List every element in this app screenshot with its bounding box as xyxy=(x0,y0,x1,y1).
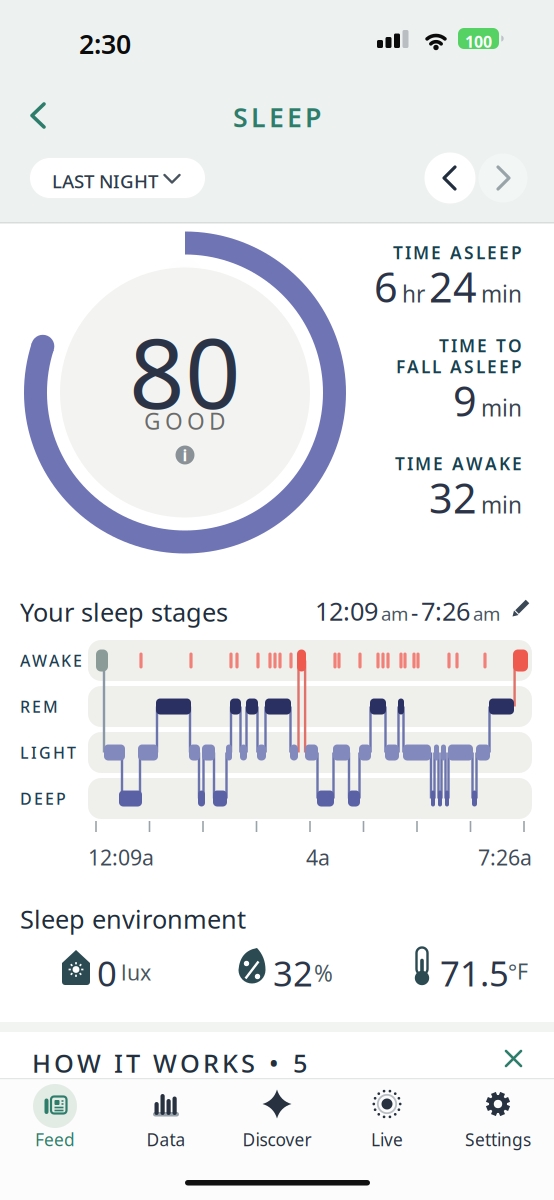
staticText: T I M E T O xyxy=(439,334,522,357)
staticText: i xyxy=(182,444,187,466)
staticText: min xyxy=(481,279,522,309)
staticText: 2:30 xyxy=(79,26,131,61)
staticText: A W A K E xyxy=(20,650,82,671)
staticText: S L E E P xyxy=(233,99,321,135)
staticText: 24 xyxy=(429,259,477,314)
staticText: 12:09a xyxy=(88,843,154,871)
staticText: R E M xyxy=(20,696,58,717)
staticText: min xyxy=(481,393,522,423)
staticText: D E E P xyxy=(20,788,66,809)
staticText: hr xyxy=(402,279,425,309)
staticText: T I M E A W A K E xyxy=(395,452,522,475)
staticText: 71.5 xyxy=(440,950,509,996)
staticText: Discover xyxy=(242,1128,311,1151)
staticText: 7:26 xyxy=(421,594,470,628)
staticText: G O O D xyxy=(144,406,226,436)
staticText: L I G H T xyxy=(20,742,76,763)
staticText: Settings xyxy=(465,1128,531,1151)
staticText: °F xyxy=(508,957,528,985)
staticText: LAST NIGHT xyxy=(52,168,158,193)
staticText: 0 xyxy=(97,950,117,996)
staticText: Your sleep stages xyxy=(20,595,228,629)
staticText: 80 xyxy=(129,306,241,436)
staticText: Data xyxy=(146,1128,185,1151)
staticText: 4a xyxy=(306,843,330,871)
staticText: lux xyxy=(121,958,151,986)
staticText: Sleep environment xyxy=(20,902,246,936)
staticText: % xyxy=(314,958,333,988)
staticText: min xyxy=(481,490,522,520)
staticText: 12:09 xyxy=(315,594,378,628)
staticText: am xyxy=(473,601,500,626)
staticText: am xyxy=(381,601,408,626)
staticText: 6 xyxy=(374,259,398,314)
staticText: 9 xyxy=(453,373,477,428)
staticText: F A L L A S L E E P xyxy=(396,355,522,378)
staticText: 32 xyxy=(429,470,477,525)
staticText: T I M E A S L E E P xyxy=(393,241,522,264)
staticText: H O W I T W O R K S • 5 xyxy=(32,1046,307,1080)
staticText: Feed xyxy=(35,1128,75,1151)
staticText: 32 xyxy=(273,950,313,996)
staticText: Live xyxy=(371,1128,403,1151)
staticText: 7:26a xyxy=(478,843,532,871)
staticText: - xyxy=(411,597,418,627)
staticText: 100 xyxy=(465,31,492,52)
